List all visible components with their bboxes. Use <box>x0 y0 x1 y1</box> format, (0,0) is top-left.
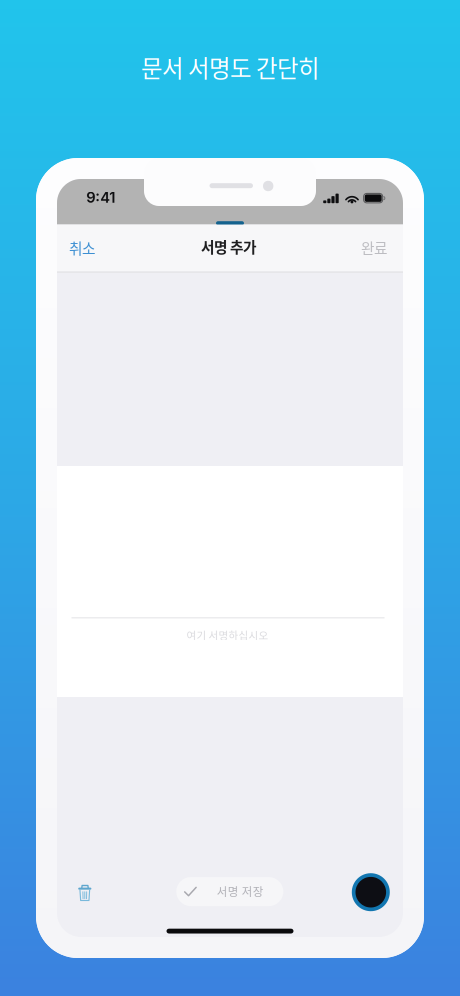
staticText: 여기 서명하십시오 <box>186 627 268 642</box>
staticText: 취소 <box>69 237 95 258</box>
button[interactable]: 취소 <box>69 229 133 265</box>
staticText: 완료 <box>361 237 387 258</box>
button[interactable]: Delete signature <box>70 876 99 909</box>
button[interactable]: 서명 저장 <box>176 877 283 906</box>
staticText: 문서 서명도 간단히 <box>141 50 319 84</box>
staticText: 서명 저장 <box>217 883 264 899</box>
button[interactable]: 완료 <box>323 229 387 265</box>
button[interactable]: Ink colour: black <box>352 873 390 911</box>
staticText: 서명 추가 <box>201 236 256 257</box>
staticText: 9:41 <box>86 189 115 206</box>
